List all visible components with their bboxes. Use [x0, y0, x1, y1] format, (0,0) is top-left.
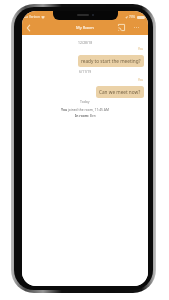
staticText: You	[138, 47, 144, 51]
staticText: Can we meet now?	[99, 89, 141, 95]
staticText: Today	[80, 99, 90, 104]
button[interactable]: ready to start the meeting?	[78, 55, 144, 67]
staticText: ready to start the meeting?	[81, 58, 141, 64]
button[interactable]: Can we meet now?	[96, 86, 144, 98]
staticText: 6/11/19	[79, 69, 92, 74]
button[interactable]: More options	[131, 20, 142, 35]
button[interactable]: Back	[22, 20, 34, 35]
staticText: You joined the room, 11:45 AM	[61, 107, 109, 111]
staticText: You	[138, 78, 144, 82]
staticText: My Room	[76, 25, 94, 30]
staticText: 73%	[129, 15, 136, 19]
button[interactable]: Cast screen	[112, 20, 131, 35]
staticText: In room: Ben	[75, 113, 96, 117]
staticText: Verizon	[29, 15, 40, 19]
staticText: 12/28/18	[78, 40, 93, 45]
